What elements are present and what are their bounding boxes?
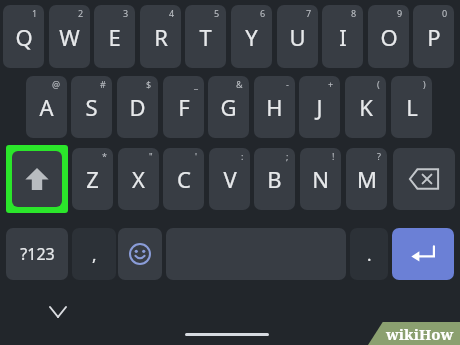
staticText: 3	[123, 7, 129, 19]
staticText: *	[102, 150, 107, 162]
staticText: &	[236, 78, 243, 90]
staticText: R	[154, 22, 168, 52]
button[interactable]: Shift	[12, 151, 62, 207]
button[interactable]: I	[322, 5, 363, 68]
button[interactable]: P	[413, 5, 454, 68]
staticText: U	[289, 22, 306, 52]
button[interactable]: Y	[231, 5, 272, 68]
button[interactable]: V	[209, 148, 250, 210]
button[interactable]: X	[118, 148, 159, 210]
button[interactable]: Z	[72, 148, 113, 210]
staticText: 8	[351, 7, 357, 19]
staticText: 0	[442, 7, 448, 19]
staticText: wikiHow	[386, 324, 454, 344]
button[interactable]: O	[368, 5, 409, 68]
button[interactable]: Backspace	[393, 148, 455, 210]
staticText: G	[220, 92, 237, 122]
staticText: H	[266, 92, 283, 122]
staticText: T	[199, 22, 212, 52]
button[interactable]: A	[26, 76, 67, 138]
button[interactable]: G	[208, 76, 249, 138]
staticText: B	[267, 164, 282, 194]
staticText: ?123	[20, 243, 55, 265]
staticText: A	[39, 92, 54, 122]
button[interactable]: U	[277, 5, 318, 68]
button[interactable]: Emoji	[118, 228, 162, 280]
staticText: Q	[15, 22, 33, 52]
staticText: 7	[306, 7, 312, 19]
staticText: 4	[169, 7, 175, 19]
staticText: Z	[86, 164, 99, 194]
staticText: ;	[286, 150, 289, 162]
button[interactable]: D	[117, 76, 158, 138]
button[interactable]: Enter	[392, 228, 454, 280]
button[interactable]: K	[345, 76, 386, 138]
staticText: !	[332, 150, 335, 162]
button[interactable]: C	[163, 148, 204, 210]
staticText: $	[146, 78, 152, 90]
button[interactable]: N	[300, 148, 341, 210]
staticText: (	[377, 78, 380, 90]
staticText: .	[367, 243, 372, 266]
staticText: 5	[214, 7, 220, 19]
staticText: X	[132, 164, 145, 194]
button[interactable]: Period	[350, 228, 388, 280]
staticText: :	[241, 150, 244, 162]
staticText: W	[59, 22, 80, 52]
staticText: ,	[92, 243, 97, 266]
button[interactable]: R	[140, 5, 181, 68]
staticText: D	[129, 92, 146, 122]
staticText: F	[178, 92, 190, 122]
button[interactable]: B	[254, 148, 295, 210]
staticText: '	[195, 150, 198, 162]
button[interactable]: S	[71, 76, 112, 138]
button[interactable]: Hide keyboard	[42, 300, 74, 324]
staticText: "	[149, 150, 153, 162]
button[interactable]: M	[346, 148, 387, 210]
staticText: 6	[260, 7, 266, 19]
button[interactable]: F	[163, 76, 204, 138]
staticText: Y	[245, 22, 258, 52]
staticText: E	[108, 22, 121, 52]
button[interactable]: Comma	[72, 228, 116, 280]
button[interactable]: Q	[3, 5, 44, 68]
staticText: P	[427, 22, 441, 52]
staticText: )	[423, 78, 426, 90]
staticText: _	[194, 78, 198, 90]
staticText: K	[359, 92, 373, 122]
staticText: N	[312, 164, 329, 194]
staticText: ?	[377, 150, 381, 162]
staticText: 2	[78, 7, 84, 19]
staticText: S	[85, 92, 98, 122]
staticText: 9	[397, 7, 403, 19]
staticText: 1	[32, 7, 38, 19]
button[interactable]: W	[49, 5, 90, 68]
staticText: L	[406, 92, 418, 122]
button[interactable]: ?123	[6, 228, 68, 280]
staticText: #	[100, 78, 106, 90]
button[interactable]: J	[299, 76, 340, 138]
staticText: @	[52, 78, 61, 90]
staticText: V	[223, 164, 237, 194]
staticText: -	[286, 78, 289, 90]
button[interactable]: T	[185, 5, 226, 68]
staticText: J	[316, 92, 323, 122]
staticText: M	[357, 164, 377, 194]
button[interactable]: E	[94, 5, 135, 68]
staticText: C	[177, 164, 191, 194]
button[interactable]: H	[254, 76, 295, 138]
button[interactable]: L	[391, 76, 432, 138]
staticText: +	[328, 78, 334, 90]
staticText: O	[380, 22, 398, 52]
staticText: I	[339, 22, 347, 52]
